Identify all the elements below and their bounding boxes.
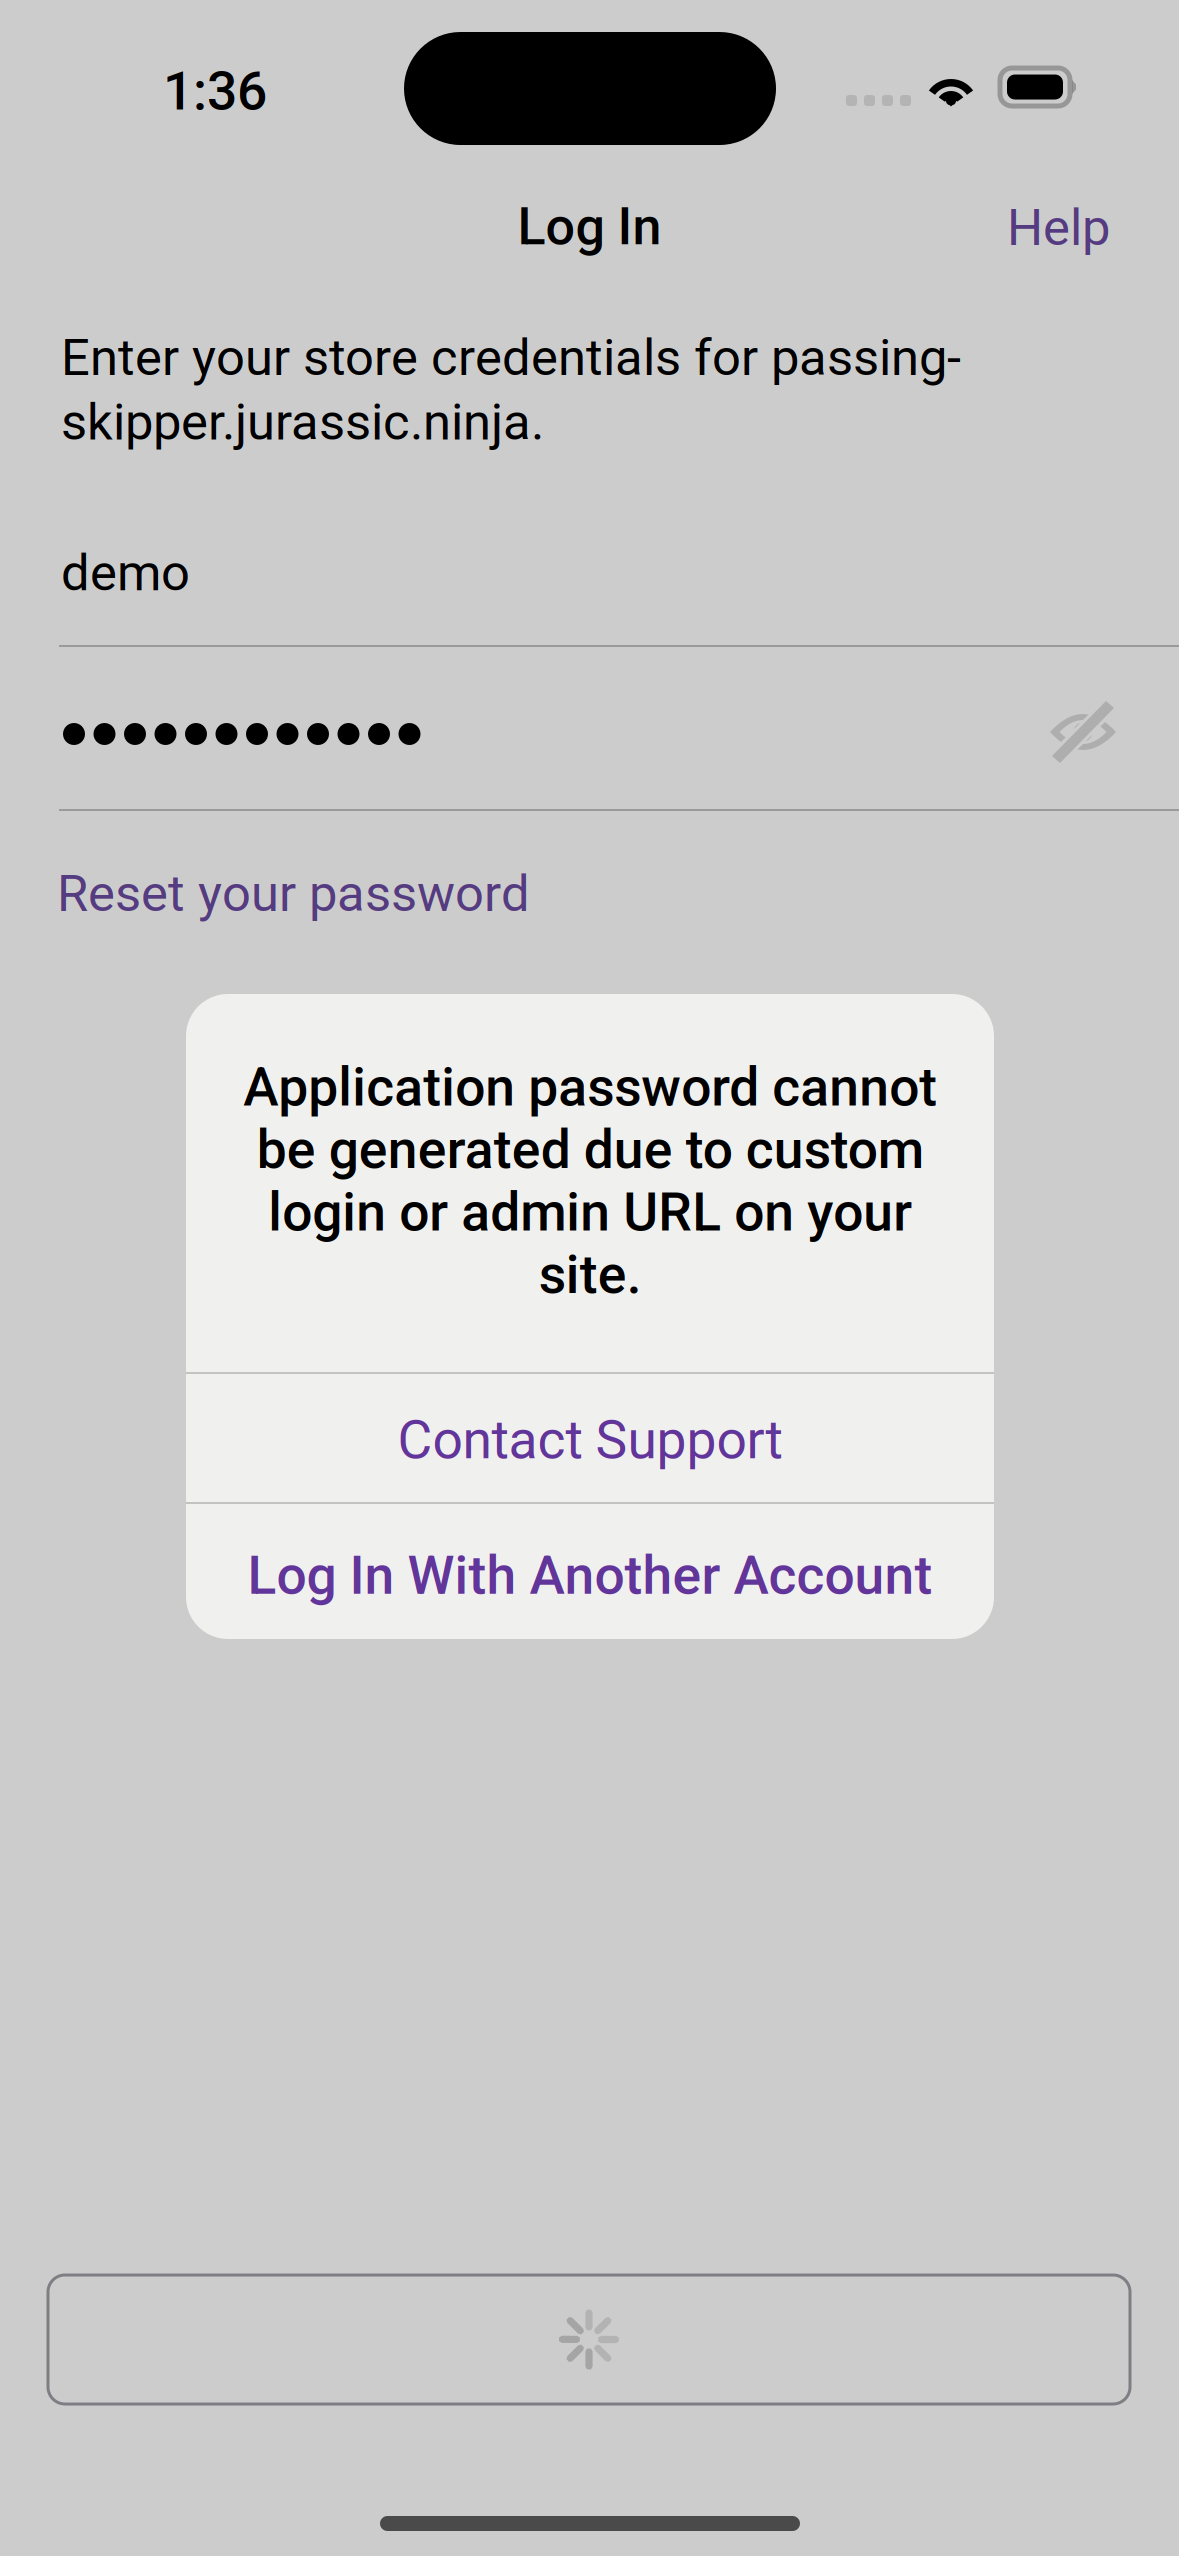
button[interactable]: Log In With Another Account	[186, 1504, 994, 1639]
staticText: 1:36	[163, 60, 267, 122]
button[interactable]: Help	[981, 178, 1136, 277]
staticText: Help	[1007, 198, 1110, 257]
staticText: Reset your password	[57, 864, 530, 923]
staticText: Contact Support	[397, 1409, 782, 1471]
staticText: Log In With Another Account	[247, 1544, 932, 1607]
staticText: Enter your store credentials for passing…	[61, 328, 961, 452]
staticText: Application password cannot be generated…	[243, 1056, 937, 1306]
button[interactable]: demo	[59, 521, 1177, 625]
button[interactable]: Log In	[48, 2275, 1130, 2404]
button[interactable]: Show password	[1023, 678, 1143, 786]
button[interactable]: Reset your password	[57, 850, 530, 937]
staticText: demo	[61, 543, 190, 603]
staticText: Log In	[517, 196, 661, 257]
button[interactable]	[59, 679, 1019, 789]
button[interactable]: Contact Support	[186, 1374, 994, 1502]
